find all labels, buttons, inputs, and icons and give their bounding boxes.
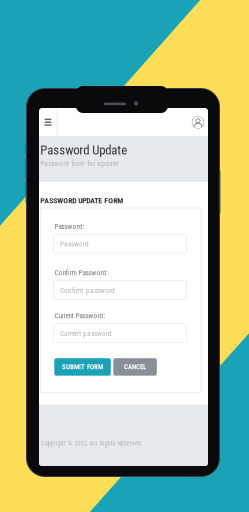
staticText: SUBMIT FORM [62, 363, 103, 371]
staticText: Password form for update [40, 159, 118, 168]
staticText: PASSWORD UPDATE FORM [40, 196, 123, 205]
staticText: Password: [54, 222, 84, 231]
button[interactable]: Account [39, 108, 55, 122]
button[interactable]: CANCEL [39, 108, 82, 125]
button[interactable]: Menu [39, 108, 53, 117]
staticText: Password Update [40, 142, 127, 157]
staticText: Confirm Password: [54, 269, 108, 277]
staticText: Current password [60, 329, 112, 338]
staticText: Copyright © 2022, All Rights Reserved. [41, 439, 143, 447]
staticText: CANCEL [124, 363, 146, 371]
button[interactable]: SUBMIT FORM [39, 108, 95, 125]
staticText: Confirm password [60, 286, 115, 295]
staticText: Password [60, 240, 89, 248]
staticText: Current Password: [54, 312, 105, 320]
